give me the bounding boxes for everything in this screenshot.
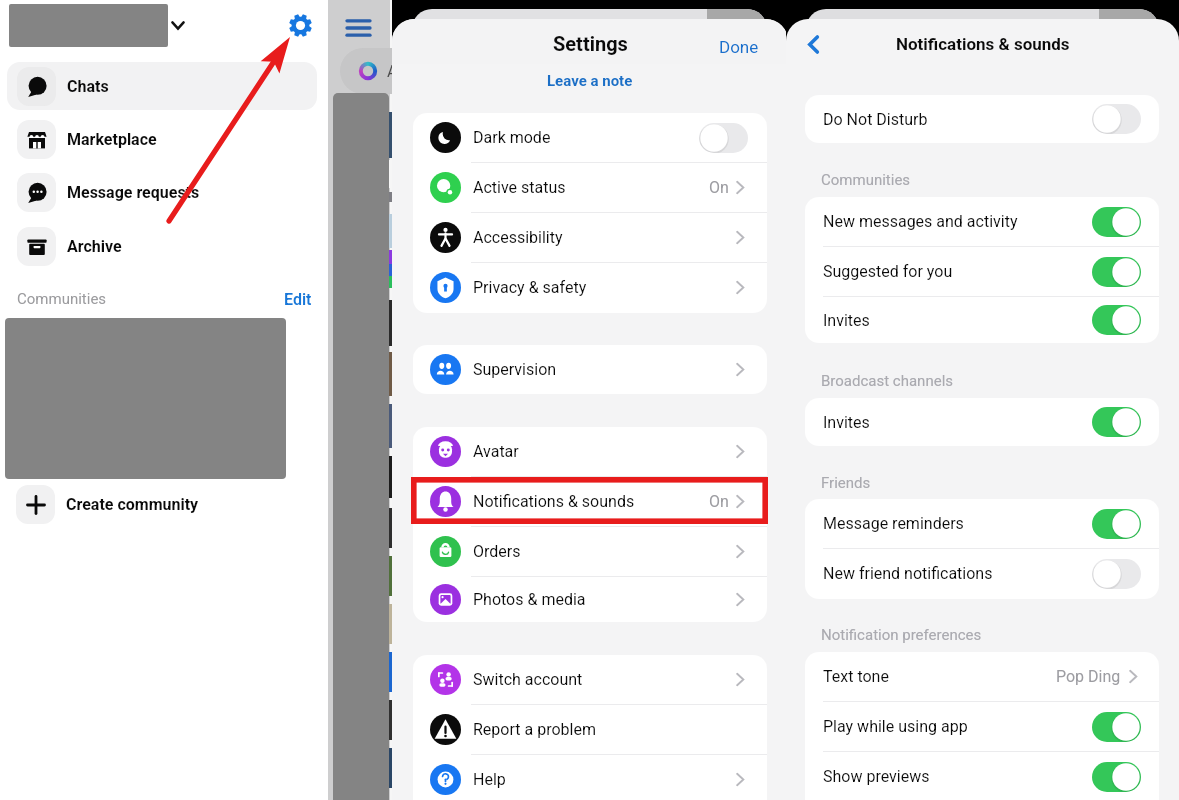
- button[interactable]: Off: [1092, 104, 1141, 134]
- staticText: On: [709, 492, 729, 511]
- button[interactable]: Edit: [281, 287, 315, 312]
- staticText: Notifications & sounds: [896, 34, 1070, 54]
- button[interactable]: Show previews: [805, 752, 1159, 800]
- staticText: Switch account: [473, 670, 583, 689]
- button[interactable]: Invites: [805, 398, 1159, 446]
- button[interactable]: Meta AI: [340, 48, 392, 94]
- button[interactable]: Archive: [7, 222, 317, 270]
- button[interactable]: Orders: [413, 527, 767, 576]
- staticText: Marketplace: [67, 130, 157, 149]
- staticText: Photos & media: [473, 590, 586, 609]
- button[interactable]: Settings: [284, 9, 316, 41]
- button[interactable]: Menu: [338, 11, 378, 45]
- staticText: Dark mode: [473, 128, 551, 147]
- button[interactable]: Report a problem: [413, 705, 767, 754]
- staticText: Do Not Disturb: [823, 110, 928, 129]
- button[interactable]: New friend notifications: [805, 549, 1159, 598]
- button[interactable]: New messages and activity: [805, 197, 1159, 246]
- staticText: Communities: [17, 290, 107, 308]
- staticText: Play while using app: [823, 717, 968, 736]
- staticText: Show previews: [823, 767, 930, 786]
- staticText: On: [709, 178, 729, 197]
- staticText: A: [387, 62, 398, 81]
- staticText: Done: [719, 37, 759, 57]
- button[interactable]: Switch account: [413, 655, 767, 704]
- staticText: New friend notifications: [823, 564, 993, 583]
- staticText: Pop Ding: [1056, 667, 1121, 686]
- staticText: Accessibility: [473, 228, 563, 247]
- staticText: Leave a note: [547, 72, 633, 90]
- staticText: Notifications & sounds: [473, 492, 635, 511]
- button[interactable]: Avatar: [413, 427, 767, 476]
- button[interactable]: Off: [1092, 559, 1141, 589]
- staticText: Text tone: [823, 667, 889, 686]
- button[interactable]: Marketplace: [7, 115, 317, 163]
- staticText: Message requests: [67, 183, 200, 202]
- staticText: New messages and activity: [823, 212, 1018, 231]
- button[interactable]: Notifications & sounds: [413, 477, 767, 526]
- staticText: Active status: [473, 178, 566, 197]
- staticText: Invites: [823, 311, 870, 330]
- staticText: Privacy & safety: [473, 278, 587, 297]
- button[interactable]: Message reminders: [805, 499, 1159, 548]
- button[interactable]: On: [1092, 407, 1141, 437]
- button[interactable]: On: [1092, 509, 1141, 539]
- button[interactable]: On: [1092, 712, 1141, 742]
- button[interactable]: Suggested for you: [805, 247, 1159, 296]
- button[interactable]: Chats: [7, 62, 317, 110]
- staticText: Communities: [821, 171, 911, 189]
- button[interactable]: Message requests: [7, 168, 317, 216]
- button[interactable]: Active status: [413, 163, 767, 212]
- staticText: Archive: [67, 237, 122, 256]
- staticText: Supervision: [473, 360, 557, 379]
- button[interactable]: Invites: [805, 297, 1159, 343]
- staticText: Help: [473, 770, 506, 789]
- staticText: Orders: [473, 542, 521, 561]
- button[interactable]: Done: [716, 34, 762, 60]
- staticText: Report a problem: [473, 720, 596, 739]
- staticText: Notification preferences: [821, 626, 982, 644]
- button[interactable]: On: [1092, 257, 1141, 287]
- button[interactable]: Photos & media: [413, 577, 767, 622]
- button[interactable]: Dark mode: [413, 113, 767, 162]
- staticText: Avatar: [473, 442, 519, 461]
- button[interactable]: Off: [699, 123, 748, 153]
- staticText: Edit: [284, 290, 312, 309]
- staticText: Create community: [66, 495, 199, 514]
- button[interactable]: Accessibility: [413, 213, 767, 262]
- button[interactable]: Back: [796, 27, 830, 61]
- staticText: Friends: [821, 474, 871, 492]
- staticText: Chats: [67, 77, 109, 96]
- button[interactable]: Play while using app: [805, 702, 1159, 751]
- button[interactable]: Privacy & safety: [413, 263, 767, 312]
- button[interactable]: Do Not Disturb: [805, 95, 1159, 143]
- staticText: Suggested for you: [823, 262, 953, 281]
- staticText: Broadcast channels: [821, 372, 954, 390]
- staticText: Settings: [553, 32, 628, 55]
- staticText: Invites: [823, 413, 870, 432]
- button[interactable]: On: [1092, 305, 1141, 335]
- button[interactable]: Text tone: [805, 652, 1159, 701]
- button[interactable]: On: [1092, 762, 1141, 792]
- button[interactable]: Supervision: [413, 345, 767, 394]
- button[interactable]: Help: [413, 755, 767, 800]
- button[interactable]: Create community: [0, 480, 328, 528]
- button[interactable]: Leave a note: [539, 69, 641, 93]
- staticText: Message reminders: [823, 514, 964, 533]
- button[interactable]: On: [1092, 207, 1141, 237]
